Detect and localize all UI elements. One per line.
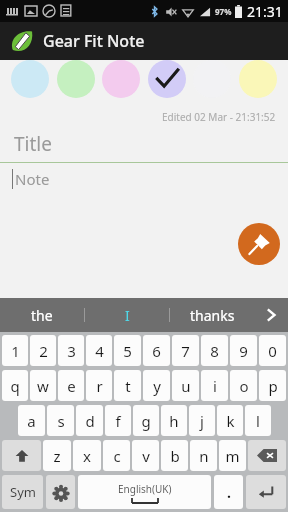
button[interactable]: Space <box>78 475 211 509</box>
button[interactable]: e <box>58 370 84 401</box>
button[interactable]: z <box>43 440 71 471</box>
staticText: I <box>125 306 130 325</box>
button[interactable]: h <box>161 405 187 436</box>
button[interactable]: Gear Fit Note <box>0 22 288 60</box>
staticText: 8 <box>210 341 219 361</box>
staticText: c <box>113 446 121 466</box>
button[interactable]: 1 <box>2 335 28 366</box>
staticText: l <box>256 411 260 431</box>
button[interactable]: 4 <box>86 335 112 366</box>
button[interactable]: 8 <box>201 335 228 366</box>
staticText: i <box>213 376 217 396</box>
staticText: r <box>96 376 103 396</box>
button[interactable]: 7 <box>172 335 199 366</box>
button[interactable]: Backspace <box>248 440 286 471</box>
button[interactable]: More suggestions <box>254 298 288 332</box>
staticText: 7 <box>181 341 190 361</box>
button[interactable]: q <box>2 370 28 401</box>
staticText: v <box>142 446 150 466</box>
button[interactable]: Note <box>0 163 288 269</box>
button[interactable]: Colour 3 <box>102 60 140 98</box>
staticText: b <box>170 446 180 466</box>
button[interactable]: Colour 2 <box>57 60 95 98</box>
button[interactable]: I <box>85 298 169 332</box>
staticText: e <box>67 376 76 396</box>
button[interactable]: l <box>245 405 271 436</box>
staticText: a <box>27 411 36 431</box>
button[interactable]: o <box>230 370 257 401</box>
staticText: o <box>239 376 249 396</box>
button[interactable]: u <box>172 370 199 401</box>
button[interactable]: j <box>189 405 215 436</box>
button[interactable]: g <box>133 405 159 436</box>
button[interactable]: b <box>161 440 188 471</box>
button[interactable]: f <box>105 405 131 436</box>
staticText: d <box>85 411 95 431</box>
button[interactable]: Sym <box>2 475 43 509</box>
staticText: u <box>181 376 191 396</box>
button[interactable]: c <box>103 440 130 471</box>
button[interactable]: n <box>190 440 217 471</box>
button[interactable]: w <box>30 370 56 401</box>
staticText: 2 <box>39 341 48 361</box>
button[interactable]: k <box>217 405 243 436</box>
button[interactable]: a <box>18 405 45 436</box>
button[interactable]: t <box>114 370 141 401</box>
button[interactable]: i <box>201 370 228 401</box>
staticText: Title <box>14 131 52 157</box>
button[interactable]: s <box>47 405 74 436</box>
staticText: f <box>115 411 121 431</box>
staticText: 0 <box>268 341 277 361</box>
staticText: j <box>200 411 204 431</box>
staticText: thanks <box>190 306 235 325</box>
button[interactable]: thanks <box>170 298 254 332</box>
button[interactable]: y <box>143 370 170 401</box>
button[interactable]: Pin note <box>238 223 280 265</box>
button[interactable]: d <box>76 405 103 436</box>
button[interactable]: Settings <box>46 475 75 509</box>
staticText: h <box>169 411 179 431</box>
staticText: w <box>37 376 49 396</box>
staticText: 9 <box>239 341 248 361</box>
staticText: k <box>226 411 235 431</box>
staticText: 97% <box>215 6 232 17</box>
staticText: Edited 02 Mar - 21:31:52 <box>162 110 276 124</box>
button[interactable]: Title <box>0 126 288 162</box>
staticText: the <box>31 306 53 325</box>
button[interactable]: 5 <box>114 335 141 366</box>
button[interactable]: Colour 6 <box>239 60 277 98</box>
staticText: 21:31 <box>247 2 283 21</box>
button[interactable]: m <box>219 440 246 471</box>
staticText: 5 <box>123 341 132 361</box>
button[interactable]: Colour 4 <box>148 60 186 98</box>
staticText: t <box>125 376 131 396</box>
staticText: s <box>57 411 65 431</box>
staticText: 3 <box>67 341 76 361</box>
staticText: Gear Fit Note <box>43 30 145 52</box>
button[interactable]: 3 <box>58 335 84 366</box>
button[interactable]: v <box>132 440 159 471</box>
button[interactable]: r <box>86 370 112 401</box>
button[interactable]: 6 <box>143 335 170 366</box>
button[interactable]: Colour 1 <box>11 60 49 98</box>
button[interactable]: the <box>0 298 84 332</box>
button[interactable]: . <box>214 475 243 509</box>
staticText: m <box>225 446 240 466</box>
button[interactable]: 0 <box>259 335 286 366</box>
staticText: . <box>227 483 231 502</box>
staticText: x <box>83 446 91 466</box>
button[interactable]: 9 <box>230 335 257 366</box>
button[interactable]: x <box>73 440 101 471</box>
button[interactable]: Shift <box>2 440 41 471</box>
staticText: q <box>10 376 20 396</box>
staticText: Note <box>15 169 50 189</box>
staticText: z <box>53 446 61 466</box>
button[interactable]: 2 <box>30 335 56 366</box>
button[interactable]: p <box>259 370 286 401</box>
staticText: y <box>153 376 161 396</box>
staticText: 4 <box>95 341 104 361</box>
button[interactable]: Enter <box>246 475 286 509</box>
staticText: English(UK) <box>118 482 172 496</box>
staticText: 1 <box>11 341 20 361</box>
